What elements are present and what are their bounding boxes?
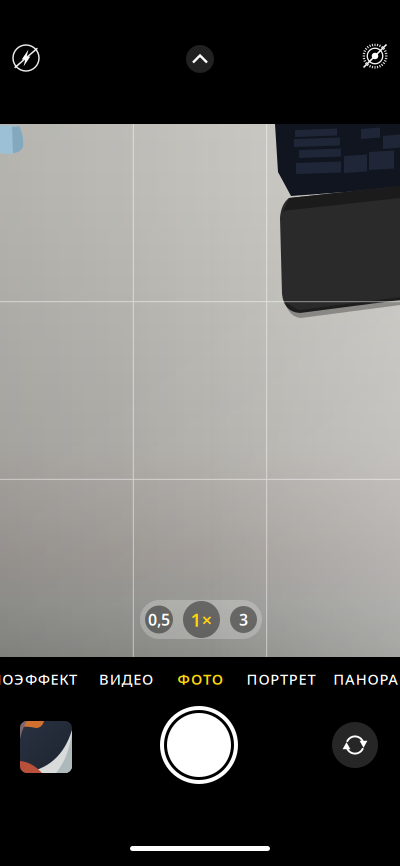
button[interactable]: ПОРТРЕТ [244, 657, 318, 701]
staticText: ПАНОРАМА [333, 669, 400, 689]
staticText: 0,5 [148, 609, 170, 630]
button[interactable]: 3x zoom [230, 606, 257, 633]
button[interactable]: 0.5x zoom [145, 605, 173, 633]
button[interactable]: КИНОЭФФЕКТ [0, 657, 78, 701]
button[interactable]: ПАНОРАМА [330, 657, 400, 701]
button[interactable]: Switch camera [332, 722, 378, 768]
button[interactable]: More camera controls [183, 42, 217, 76]
button[interactable]: ФОТО [175, 657, 225, 701]
staticText: ФОТО [177, 669, 223, 689]
button[interactable]: Live Photo off [358, 39, 392, 73]
staticText: КИНОЭФФЕКТ [0, 669, 77, 689]
button[interactable]: 1x zoom [183, 601, 220, 638]
button[interactable]: Flash off [9, 43, 43, 73]
button[interactable]: Take photo [161, 707, 237, 783]
staticText: ВИДЕО [99, 669, 153, 689]
button[interactable]: Photo library [20, 721, 72, 773]
staticText: 1× [190, 607, 212, 632]
button[interactable]: ВИДЕО [97, 657, 155, 701]
staticText: 3 [239, 609, 248, 630]
staticText: ПОРТРЕТ [247, 669, 315, 689]
